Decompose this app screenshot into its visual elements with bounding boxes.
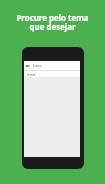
button[interactable]: temas <box>24 71 80 77</box>
button[interactable]: Back <box>24 61 80 70</box>
other: Back <box>26 64 30 68</box>
staticText: buscar <box>33 64 43 68</box>
staticText: temas <box>27 73 36 77</box>
staticText: Procure pelo tema que desejar <box>0 13 105 32</box>
